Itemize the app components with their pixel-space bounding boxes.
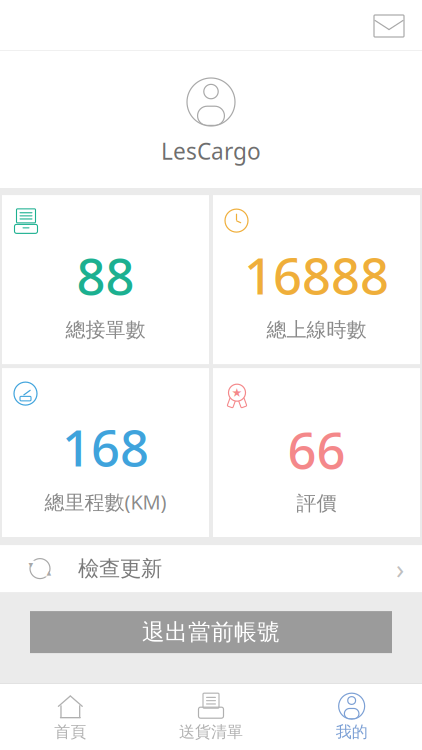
staticText: 送貨清單 (179, 722, 243, 742)
staticText: 16888 (244, 241, 389, 308)
staticText: 168 (62, 413, 149, 480)
staticText: 66 (287, 416, 345, 483)
staticText: 總里程數(KM) (44, 488, 166, 515)
staticText: LesCargo (161, 136, 261, 166)
button[interactable]: ▾ (0, 545, 422, 592)
staticText: ▴ (46, 567, 51, 578)
button[interactable]: 16888 (213, 195, 420, 364)
button[interactable]: ★ (213, 368, 420, 537)
button[interactable]: 168 (2, 368, 209, 537)
staticText: 評價 (296, 491, 336, 516)
button[interactable]: 首頁 (0, 684, 141, 750)
button[interactable]: 88 (2, 195, 209, 364)
button[interactable]: Messages (373, 0, 422, 50)
staticText: 檢查更新 (78, 555, 162, 582)
staticText: 我的 (336, 722, 368, 742)
staticText: 退出當前帳號 (142, 618, 280, 646)
staticText: 88 (76, 242, 134, 309)
staticText: ★ (231, 386, 242, 399)
staticText: 總上線時數 (266, 317, 366, 342)
button[interactable]: 送貨清單 (141, 684, 281, 750)
staticText: 首頁 (54, 722, 86, 742)
staticText: ▾ (28, 559, 33, 570)
button[interactable]: 退出當前帳號 (30, 611, 392, 653)
staticText: › (396, 551, 404, 586)
staticText: 總接單數 (65, 317, 145, 342)
button[interactable]: 我的 (281, 684, 422, 750)
